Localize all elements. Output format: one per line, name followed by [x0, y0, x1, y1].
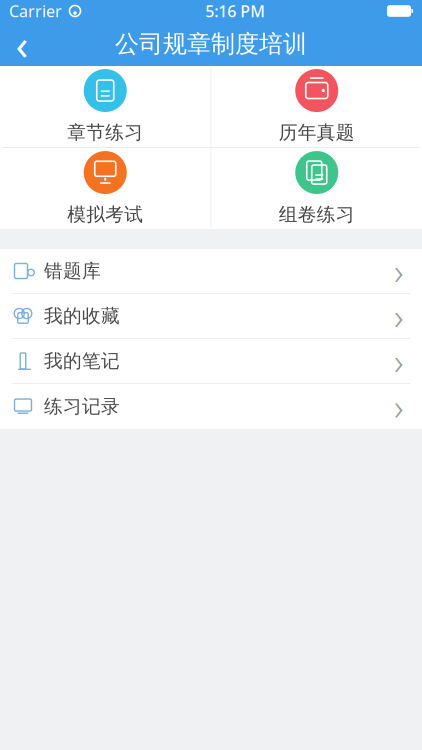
button[interactable]: 组卷练习 — [211, 148, 422, 229]
staticText: 模拟考试 — [67, 203, 143, 226]
button[interactable]: 我的笔记 — [0, 339, 422, 384]
staticText: 我的笔记 — [44, 349, 120, 372]
button[interactable]: 我的收藏 — [0, 294, 422, 339]
button[interactable]: Back — [0, 22, 44, 66]
button[interactable]: 模拟考试 — [0, 148, 210, 229]
button[interactable]: 历年真题 — [211, 66, 422, 147]
staticText: 错题库 — [44, 259, 101, 282]
staticText: 章节练习 — [67, 121, 143, 144]
staticText: Carrier — [9, 0, 62, 22]
staticText: 练习记录 — [44, 395, 120, 418]
staticText: 历年真题 — [279, 121, 355, 144]
staticText: ‹ — [15, 17, 28, 71]
button[interactable]: 错题库 — [0, 249, 422, 294]
staticText: 公司规章制度培训 — [115, 29, 307, 59]
staticText: 5:16 PM — [205, 0, 265, 22]
button[interactable]: 练习记录 — [0, 384, 422, 429]
staticText: › — [394, 337, 404, 385]
staticText: › — [394, 292, 404, 340]
staticText: › — [394, 383, 404, 430]
staticText: › — [394, 247, 404, 295]
staticText: 组卷练习 — [279, 203, 355, 226]
staticText: 我的收藏 — [44, 304, 120, 327]
button[interactable]: 章节练习 — [0, 66, 210, 147]
